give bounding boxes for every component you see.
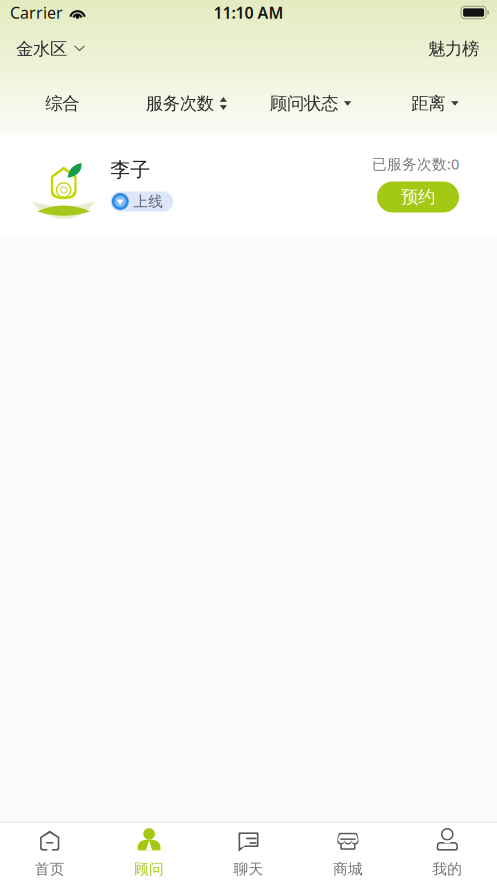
staticText: 11:10 AM [213,2,283,23]
button[interactable]: 顾问状态 [248,73,373,134]
staticText: 商城 [333,860,363,878]
button[interactable]: 服务次数 [124,73,248,134]
staticText: 预约 [401,186,435,208]
button[interactable]: 金水区 [0,25,99,73]
button[interactable]: 聊天 [199,823,298,883]
button[interactable]: 魅力榜 [414,25,497,73]
staticText: 综合 [45,93,79,114]
button[interactable]: 李子 [0,134,497,235]
staticText: Carrier [10,2,63,23]
staticText: 顾问状态 [270,93,338,114]
staticText: 首页 [35,860,65,878]
button[interactable]: 距离 [373,73,497,134]
button[interactable]: 预约 [377,181,459,212]
staticText: 距离 [411,93,445,114]
staticText: 金水区 [16,38,67,60]
staticText: 已服务次数:0 [372,154,459,173]
button[interactable]: 顾问 [99,823,199,883]
button[interactable]: 商城 [298,823,398,883]
staticText: 聊天 [233,860,263,878]
staticText: 顾问 [134,860,164,878]
staticText: 我的 [432,860,462,878]
staticText: 魅力榜 [428,38,479,60]
button[interactable]: 首页 [0,823,99,883]
staticText: 李子 [110,157,150,182]
staticText: 上线 [133,192,163,210]
button[interactable]: 我的 [398,823,497,883]
button[interactable]: 综合 [0,73,124,134]
staticText: 服务次数 [146,93,214,114]
